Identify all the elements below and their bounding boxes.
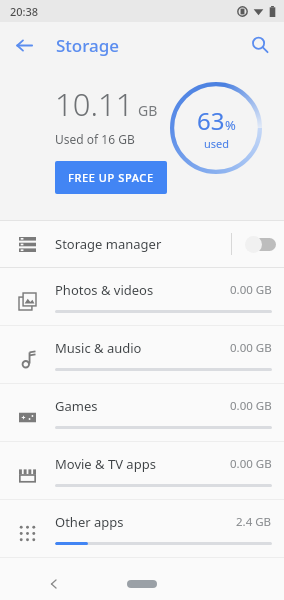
staticText: 0.00 GB <box>230 456 272 472</box>
staticText: 63 <box>197 104 225 137</box>
staticText: % <box>225 116 236 134</box>
staticText: 2.4 GB <box>236 514 272 530</box>
button[interactable]: Storage manager <box>0 221 284 267</box>
staticText: used <box>204 136 230 151</box>
button[interactable]: Games <box>0 384 284 442</box>
button[interactable]: Back <box>4 25 44 65</box>
staticText: FREE UP SPACE <box>68 170 154 185</box>
staticText: Music & audio <box>55 339 230 357</box>
staticText: GB <box>138 101 158 120</box>
staticText: Storage manager <box>55 235 231 253</box>
button[interactable]: Movie & TV apps <box>0 442 284 500</box>
button[interactable]: Other apps <box>0 500 284 558</box>
staticText: Other apps <box>55 513 236 531</box>
staticText: 0.00 GB <box>230 398 272 414</box>
staticText: 10.11 <box>55 83 134 125</box>
button[interactable]: Storage manager toggle <box>232 221 284 267</box>
staticText: Storage <box>56 34 120 57</box>
staticText: 20:38 <box>10 4 39 19</box>
button[interactable]: Back <box>40 570 68 598</box>
staticText: 0.00 GB <box>230 282 272 298</box>
button[interactable]: Home <box>127 580 157 588</box>
button[interactable]: FREE UP SPACE <box>55 161 167 194</box>
button[interactable]: Music & audio <box>0 326 284 384</box>
staticText: Used of 16 GB <box>55 131 135 147</box>
button[interactable]: Search <box>240 25 280 65</box>
staticText: Photos & videos <box>55 281 230 299</box>
staticText: Games <box>55 397 230 415</box>
button[interactable]: Photos & videos <box>0 268 284 326</box>
staticText: 0.00 GB <box>230 340 272 356</box>
staticText: Movie & TV apps <box>55 455 230 473</box>
